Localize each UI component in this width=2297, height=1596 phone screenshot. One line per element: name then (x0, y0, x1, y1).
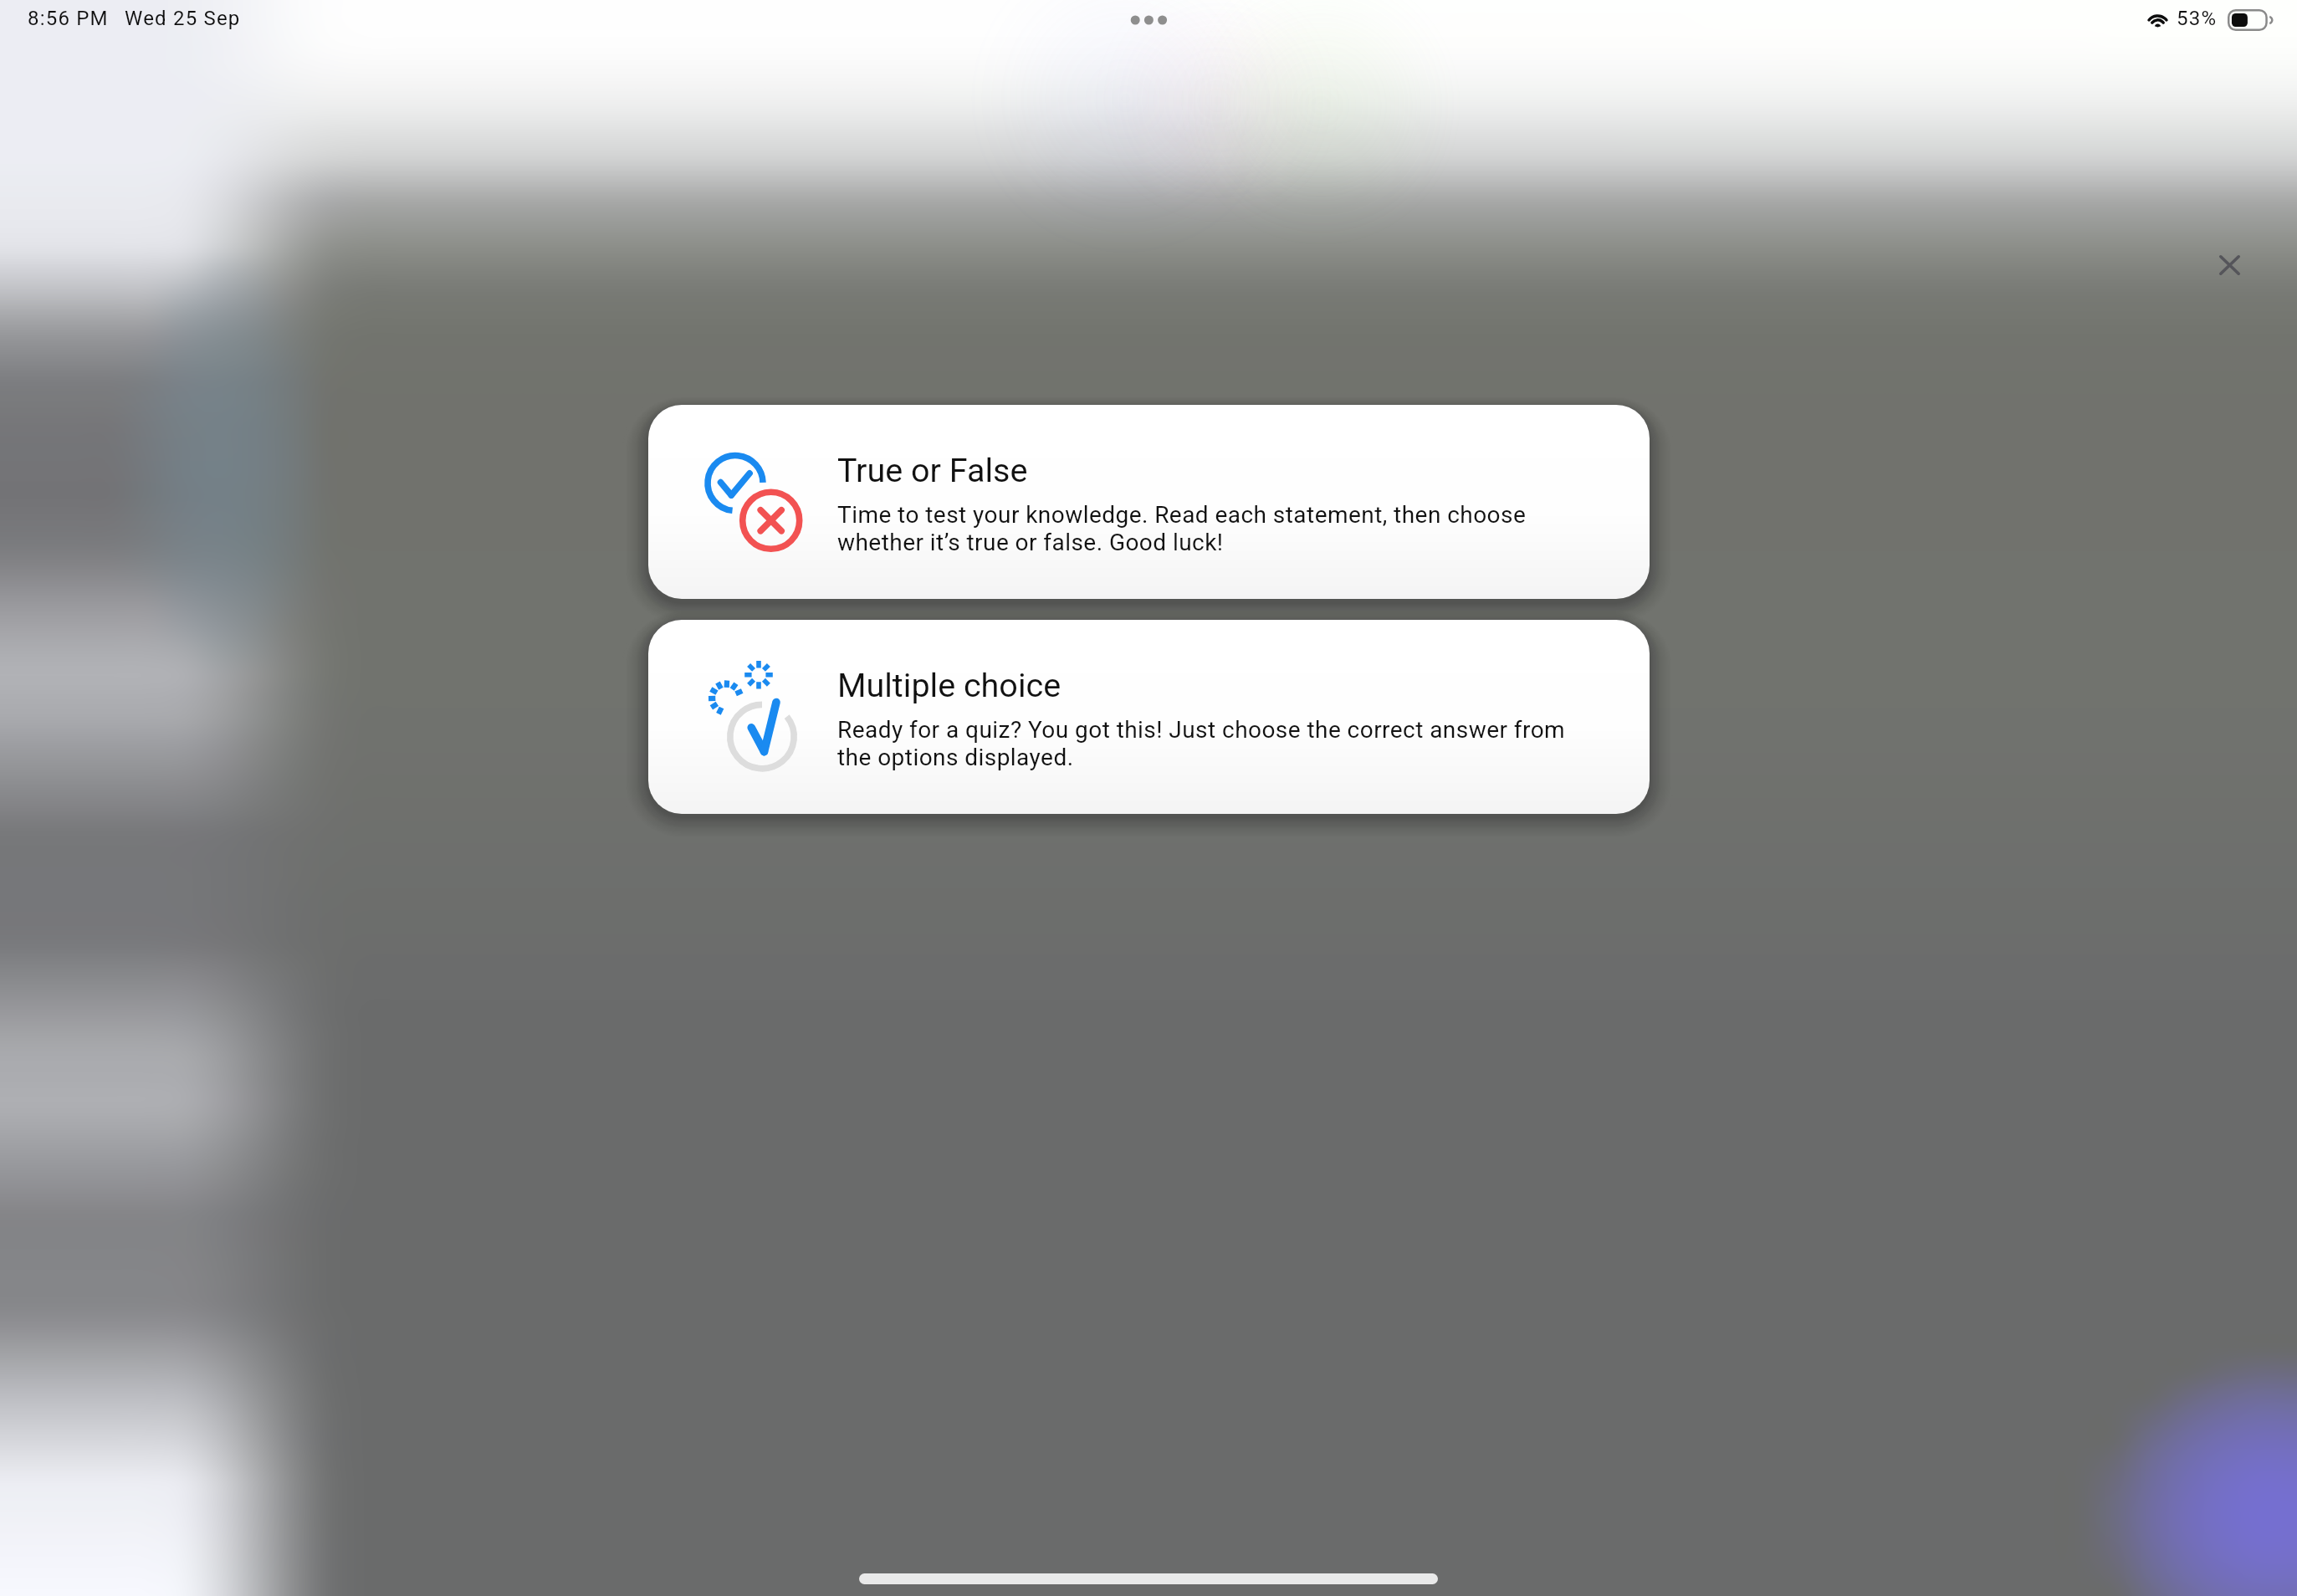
staticText: True or False (837, 451, 1028, 489)
button[interactable]: Close (2184, 220, 2274, 310)
staticText: Ready for a quiz? You got this! Just cho… (837, 716, 1586, 771)
button[interactable]: Multiple choice (648, 620, 1650, 814)
staticText: 53% (2177, 7, 2218, 30)
staticText: 8:56 PM (28, 7, 109, 30)
staticText: Wed 25 Sep (125, 7, 241, 30)
button[interactable]: True or False (648, 405, 1650, 599)
staticText: Time to test your knowledge. Read each s… (837, 501, 1586, 556)
staticText: Multiple choice (837, 666, 1062, 704)
